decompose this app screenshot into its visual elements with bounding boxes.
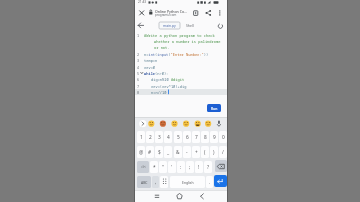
button[interactable]: +: [192, 146, 200, 158]
button[interactable]: .: [206, 176, 213, 188]
button[interactable]: /: [219, 146, 227, 158]
button[interactable]: [215, 119, 223, 129]
button[interactable]: [136, 22, 145, 30]
staticText: n=n//10: [151, 90, 167, 95]
staticText: Shell: [186, 23, 194, 28]
button[interactable]: [151, 190, 163, 202]
button[interactable]: &: [174, 146, 182, 158]
staticText: ?: [207, 164, 210, 171]
button[interactable]: @: [137, 146, 145, 158]
staticText: n=int(input("Enter Number:")): [144, 52, 209, 57]
button[interactable]: [182, 119, 191, 129]
staticText: =\<: [141, 165, 146, 169]
button[interactable]: (: [201, 146, 209, 158]
button[interactable]: ): [210, 146, 218, 158]
button[interactable]: !: [195, 161, 203, 173]
button[interactable]: 4: [164, 131, 172, 143]
staticText: _: [167, 149, 170, 156]
button[interactable]: [147, 119, 156, 129]
button[interactable]: #: [146, 146, 154, 158]
staticText: 7: [195, 134, 198, 141]
button[interactable]: 0: [219, 131, 227, 143]
staticText: 6: [137, 77, 140, 82]
button[interactable]: [214, 175, 227, 187]
button[interactable]: [139, 120, 147, 128]
staticText: 3: [137, 58, 140, 63]
staticText: (: [204, 149, 206, 156]
staticText: @: [139, 149, 144, 156]
button[interactable]: ?: [204, 161, 212, 173]
staticText: Run: [211, 106, 218, 111]
button[interactable]: *: [150, 161, 158, 173]
button[interactable]: English: [170, 176, 205, 188]
button[interactable]: 8: [201, 131, 209, 143]
button[interactable]: 5: [174, 131, 182, 143]
button[interactable]: 1: [137, 131, 145, 143]
button[interactable]: 7: [192, 131, 200, 143]
staticText: #Write a python program to check: [144, 33, 215, 38]
button[interactable]: _: [164, 146, 172, 158]
button[interactable]: [217, 22, 225, 30]
staticText: &: [176, 149, 180, 156]
button[interactable]: [160, 176, 168, 188]
staticText: 5: [177, 134, 180, 141]
staticText: rev=0: [144, 65, 156, 70]
button[interactable]: [138, 9, 146, 17]
staticText: programiz.com: [155, 13, 177, 17]
button[interactable]: [215, 160, 227, 172]
staticText: English: [182, 180, 194, 185]
button[interactable]: [159, 119, 168, 129]
staticText: -: [186, 149, 188, 156]
staticText: 1: [140, 134, 143, 141]
staticText: ': [171, 164, 173, 171]
button[interactable]: [216, 9, 224, 17]
staticText: dig=n%10 #digit: [151, 77, 185, 82]
staticText: $: [158, 149, 161, 156]
button[interactable]: [194, 119, 203, 129]
staticText: ": [162, 164, 164, 171]
staticText: 9: [213, 134, 216, 141]
staticText: 1: [137, 33, 140, 38]
button[interactable]: Run: [207, 104, 221, 112]
button[interactable]: ': [168, 161, 176, 173]
button[interactable]: 9: [210, 131, 218, 143]
staticText: #: [148, 149, 152, 156]
button[interactable]: ": [159, 161, 167, 173]
button[interactable]: 3: [155, 131, 163, 143]
button[interactable]: 2: [146, 131, 154, 143]
button[interactable]: [205, 9, 213, 17]
staticText: ): [213, 149, 215, 156]
button[interactable]: [174, 190, 186, 202]
button[interactable]: ,: [152, 176, 159, 188]
staticText: .: [209, 179, 211, 185]
button[interactable]: [205, 119, 214, 129]
button[interactable]: main.py: [159, 22, 180, 29]
staticText: ,: [155, 179, 157, 185]
button[interactable]: ABC: [137, 176, 151, 188]
staticText: 4: [167, 134, 170, 141]
button[interactable]: $: [155, 146, 163, 158]
staticText: or not.: [154, 45, 170, 50]
staticText: 2: [137, 52, 140, 57]
staticText: 8: [204, 134, 207, 141]
staticText: 6: [186, 134, 189, 141]
staticText: +: [195, 149, 198, 156]
button[interactable]: -: [183, 146, 191, 158]
staticText: main.py: [163, 23, 176, 28]
staticText: 21:43: [138, 0, 147, 4]
button[interactable]: ;: [186, 161, 194, 173]
staticText: temp=n: [144, 58, 158, 63]
button[interactable]: 6: [183, 131, 191, 143]
button[interactable]: [196, 190, 208, 202]
button[interactable]: Shell: [183, 22, 197, 29]
staticText: 8: [137, 90, 140, 95]
staticText: 5: [137, 71, 140, 76]
button[interactable]: [171, 119, 180, 129]
staticText: 2: [149, 134, 152, 141]
staticText: 7: [137, 84, 140, 89]
staticText: !: [198, 164, 200, 171]
button[interactable]: =\<: [137, 161, 149, 173]
staticText: 3: [158, 134, 161, 141]
button[interactable]: :: [177, 161, 185, 173]
button[interactable]: [192, 9, 200, 17]
